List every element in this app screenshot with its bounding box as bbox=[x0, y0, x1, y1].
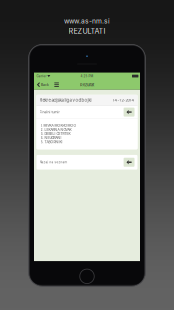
staticText: 4:25 PM bbox=[80, 74, 93, 78]
staticText: 3. DEBELI ČETRTEK bbox=[40, 132, 70, 136]
staticText: Nazaj na seznam bbox=[39, 160, 67, 164]
staticText: 4. NEUGRANI bbox=[40, 136, 61, 140]
staticText: REZULTATI bbox=[68, 27, 105, 35]
staticText: www.as-nm.si bbox=[64, 17, 110, 25]
staticText: Back bbox=[41, 83, 49, 87]
staticText: 5. TABORNIKI bbox=[40, 140, 62, 144]
button[interactable]: Nazaj bbox=[124, 108, 134, 117]
button[interactable]: Nazaj bbox=[124, 158, 134, 167]
button[interactable]: Back bbox=[35, 80, 50, 89]
staticText: Finalni turnir bbox=[39, 110, 59, 114]
staticText: Carrier bbox=[36, 74, 46, 78]
button[interactable]: Menu bbox=[52, 80, 61, 89]
staticText: Rekreacijska liga v odbojki bbox=[39, 98, 91, 103]
staticText: Rezultat bbox=[80, 82, 94, 87]
staticText: 1. MIVKA MOKROMOG bbox=[40, 124, 75, 128]
staticText: 14-12-2014 bbox=[112, 98, 134, 103]
staticText: 2. LEKARNA NOVAK bbox=[40, 128, 71, 132]
